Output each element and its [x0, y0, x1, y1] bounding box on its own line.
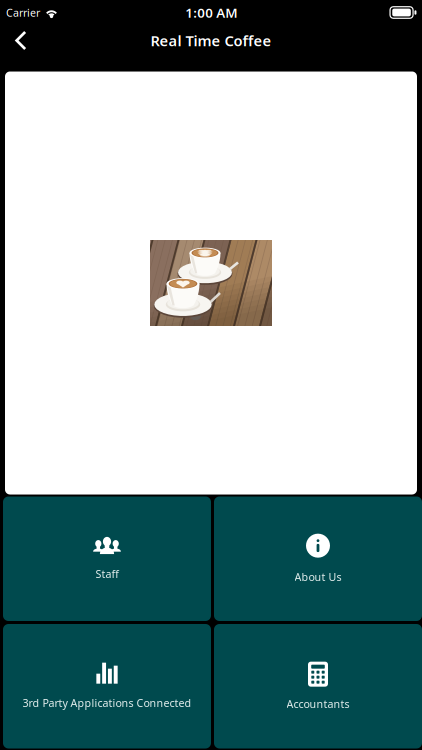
- staticText: Accountants: [286, 697, 349, 711]
- button[interactable]: Accountants: [214, 624, 422, 748]
- button[interactable]: Back: [0, 23, 42, 57]
- staticText: Carrier: [6, 5, 40, 20]
- staticText: 3rd Party Applications Connected: [22, 696, 191, 710]
- button[interactable]: 3rd Party Applications Connected: [3, 624, 211, 748]
- staticText: Staff: [95, 567, 118, 581]
- button[interactable]: Staff: [3, 496, 211, 621]
- staticText: About Us: [294, 570, 341, 584]
- staticText: 1:00 AM: [185, 4, 237, 21]
- button[interactable]: About Us: [214, 496, 422, 621]
- staticText: Real Time Coffee: [150, 31, 271, 50]
